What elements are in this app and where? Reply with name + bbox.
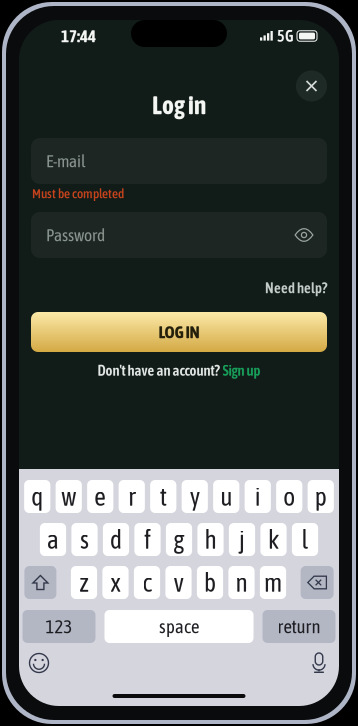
staticText: z (79, 568, 88, 597)
staticText: e (94, 482, 106, 511)
button[interactable]: return (262, 610, 335, 643)
button[interactable]: p (308, 480, 334, 513)
button[interactable]: Delete (301, 566, 334, 599)
button[interactable]: j (229, 523, 255, 556)
button[interactable]: y (182, 480, 208, 513)
staticText: g (173, 525, 184, 554)
staticText: h (204, 525, 216, 554)
staticText: Must be completed (32, 186, 124, 201)
staticText: q (31, 482, 43, 511)
staticText: Don't have an account? (97, 362, 219, 379)
staticText: u (220, 482, 232, 511)
button[interactable]: Sign up (222, 362, 260, 379)
button[interactable]: space (104, 610, 253, 643)
staticText: 123 (45, 616, 72, 637)
staticText: t (160, 482, 167, 511)
button[interactable]: Dictate (302, 651, 336, 675)
button[interactable]: x (102, 566, 129, 599)
staticText: LOG IN (158, 322, 199, 342)
button[interactable]: r (119, 480, 145, 513)
staticText: r (128, 482, 135, 511)
staticText: i (255, 482, 261, 511)
staticText: v (173, 568, 183, 597)
button[interactable]: c (134, 566, 160, 599)
button[interactable]: m (260, 566, 286, 599)
staticText: b (204, 568, 216, 597)
button[interactable]: n (228, 566, 255, 599)
staticText: Log in (152, 90, 206, 119)
button[interactable]: Emoji (22, 651, 56, 675)
button[interactable]: q (24, 480, 50, 513)
staticText: f (144, 525, 151, 554)
staticText: c (142, 568, 151, 597)
button[interactable]: v (165, 566, 192, 599)
staticText: x (110, 568, 120, 597)
button[interactable]: o (276, 480, 302, 513)
button[interactable]: t (150, 480, 176, 513)
staticText: a (47, 525, 59, 554)
button[interactable]: b (197, 566, 223, 599)
button[interactable]: f (134, 523, 161, 556)
button[interactable]: h (197, 523, 224, 556)
button[interactable]: a (40, 523, 66, 556)
staticText: l (301, 525, 308, 554)
staticText: j (239, 525, 245, 554)
staticText: n (235, 568, 247, 597)
button[interactable]: Close (296, 70, 327, 101)
button[interactable]: i (245, 480, 271, 513)
button[interactable]: k (260, 523, 287, 556)
staticText: o (283, 482, 295, 511)
staticText: 17:44 (61, 26, 96, 46)
staticText: m (264, 568, 282, 597)
staticText: Need help? (265, 280, 327, 296)
button[interactable]: 123 (22, 610, 95, 643)
staticText: p (315, 482, 327, 511)
staticText: 5G (277, 27, 293, 45)
staticText: d (110, 525, 122, 554)
button[interactable]: u (213, 480, 239, 513)
staticText: s (80, 525, 89, 554)
staticText: y (190, 482, 200, 511)
button[interactable]: g (166, 523, 192, 556)
staticText: Sign up (222, 362, 260, 379)
button[interactable]: Shift (24, 566, 56, 599)
button[interactable]: w (56, 480, 82, 513)
button[interactable]: e (87, 480, 113, 513)
button[interactable]: d (103, 523, 129, 556)
staticText: k (268, 525, 279, 554)
button[interactable]: Need help? (265, 280, 327, 296)
button[interactable]: s (71, 523, 98, 556)
button[interactable]: l (292, 523, 318, 556)
staticText: E-mail (46, 151, 86, 171)
button[interactable]: Show password (287, 220, 321, 250)
staticText: space (159, 616, 199, 637)
staticText: Password (46, 225, 105, 245)
staticText: return (277, 616, 320, 637)
button[interactable]: z (71, 566, 97, 599)
staticText: w (61, 482, 76, 511)
button[interactable]: LOG IN (19, 312, 339, 352)
